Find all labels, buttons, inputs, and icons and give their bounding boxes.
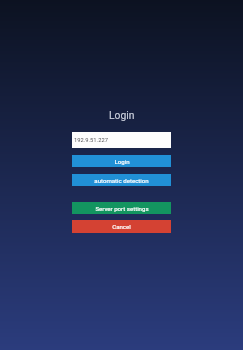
button[interactable]: Login [72,155,171,167]
button[interactable]: Cancel [72,220,171,233]
staticText: Server port settings [95,205,149,212]
button[interactable]: automatic detection [72,174,171,186]
staticText: Login [109,109,135,121]
staticText: 192.9.51.227 [74,137,108,144]
button[interactable]: Server address input [72,132,171,148]
button[interactable]: Server port settings [72,202,171,214]
staticText: Login [114,158,130,165]
staticText: automatic detection [94,177,149,184]
staticText: Cancel [112,223,131,230]
